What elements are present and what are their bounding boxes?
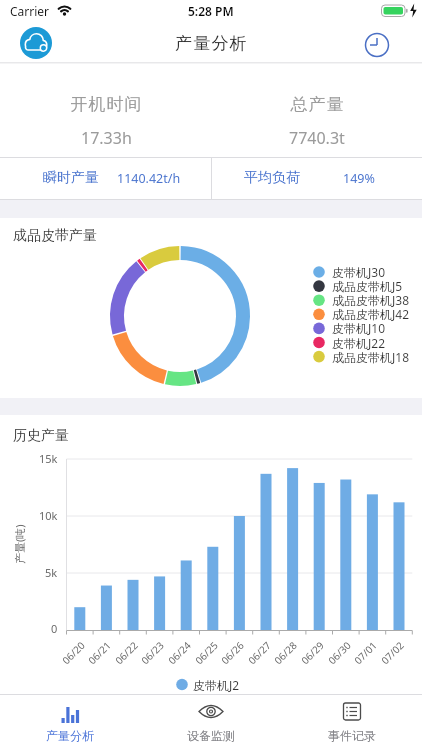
staticText: 产量(吨) — [12, 524, 27, 564]
staticText: 7740.3t — [289, 127, 345, 149]
staticText: 成品皮带机J38 — [332, 292, 410, 308]
staticText: 瞬时产量 — [43, 169, 99, 187]
staticText: 06/26 — [218, 638, 247, 667]
staticText: 06/29 — [298, 638, 327, 667]
staticText: 06/28 — [271, 638, 300, 667]
staticText: 平均负荷 — [244, 169, 300, 187]
staticText: 设备监测 — [187, 728, 235, 743]
staticText: 06/23 — [138, 638, 167, 667]
staticText: 产量分析 — [46, 728, 94, 743]
staticText: 5:28 PM — [188, 3, 234, 19]
staticText: 产量分析 — [175, 33, 248, 54]
staticText: 07/02 — [378, 638, 407, 667]
staticText: 事件记录 — [328, 728, 376, 743]
staticText: 总产量 — [290, 94, 344, 115]
staticText: 历史产量 — [13, 427, 69, 445]
staticText: 06/25 — [192, 638, 221, 667]
staticText: Carrier — [10, 3, 50, 19]
staticText: 皮带机J10 — [332, 320, 386, 336]
staticText: 06/22 — [112, 638, 141, 667]
staticText: 皮带机J2 — [193, 677, 240, 693]
staticText: 06/21 — [85, 638, 114, 667]
staticText: 皮带机J30 — [332, 264, 386, 280]
staticText: 06/30 — [325, 638, 354, 667]
staticText: 06/20 — [59, 638, 88, 667]
staticText: 15k — [39, 451, 58, 466]
staticText: 成品皮带产量 — [13, 227, 97, 245]
staticText: 10k — [39, 508, 58, 523]
staticText: 开机时间 — [70, 94, 142, 115]
staticText: 149% — [343, 170, 375, 187]
staticText: 1140.42t/h — [117, 170, 181, 187]
staticText: 06/27 — [245, 638, 274, 667]
staticText: 17.33h — [81, 127, 132, 149]
staticText: 5k — [45, 565, 58, 580]
staticText: 07/01 — [351, 638, 380, 667]
staticText: 0 — [51, 621, 58, 636]
staticText: 皮带机J22 — [332, 335, 386, 351]
staticText: 06/24 — [165, 638, 194, 667]
staticText: 成品皮带机J18 — [332, 349, 410, 365]
staticText: 成品皮带机J42 — [332, 306, 410, 322]
staticText: 成品皮带机J5 — [332, 278, 403, 294]
